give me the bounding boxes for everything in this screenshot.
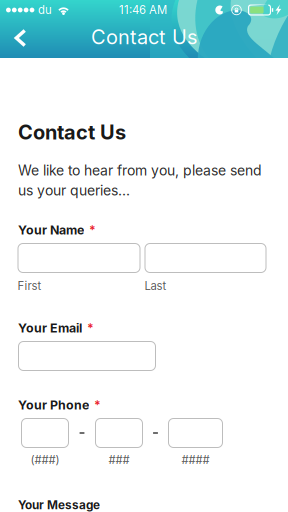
staticText: us your queries... bbox=[18, 182, 130, 199]
staticText: ### bbox=[108, 453, 129, 467]
staticText: Your Name bbox=[18, 222, 84, 237]
staticText: Last bbox=[144, 279, 166, 293]
staticText: Your Email bbox=[18, 320, 82, 335]
staticText: * bbox=[89, 223, 96, 237]
staticText: First bbox=[17, 279, 41, 293]
staticText: du bbox=[38, 3, 52, 17]
staticText: * bbox=[94, 398, 101, 412]
staticText: * bbox=[87, 321, 94, 335]
staticText: Contact Us bbox=[91, 25, 197, 49]
staticText: Your Phone bbox=[18, 397, 89, 412]
staticText: We like to hear from you, please send bbox=[18, 162, 262, 179]
staticText: 11:46 AM bbox=[119, 3, 167, 17]
button[interactable]: Back bbox=[0, 20, 38, 58]
staticText: (###) bbox=[30, 453, 59, 467]
staticText: #### bbox=[181, 453, 209, 467]
staticText: Contact Us bbox=[18, 120, 126, 144]
staticText: Your Message bbox=[18, 498, 100, 512]
